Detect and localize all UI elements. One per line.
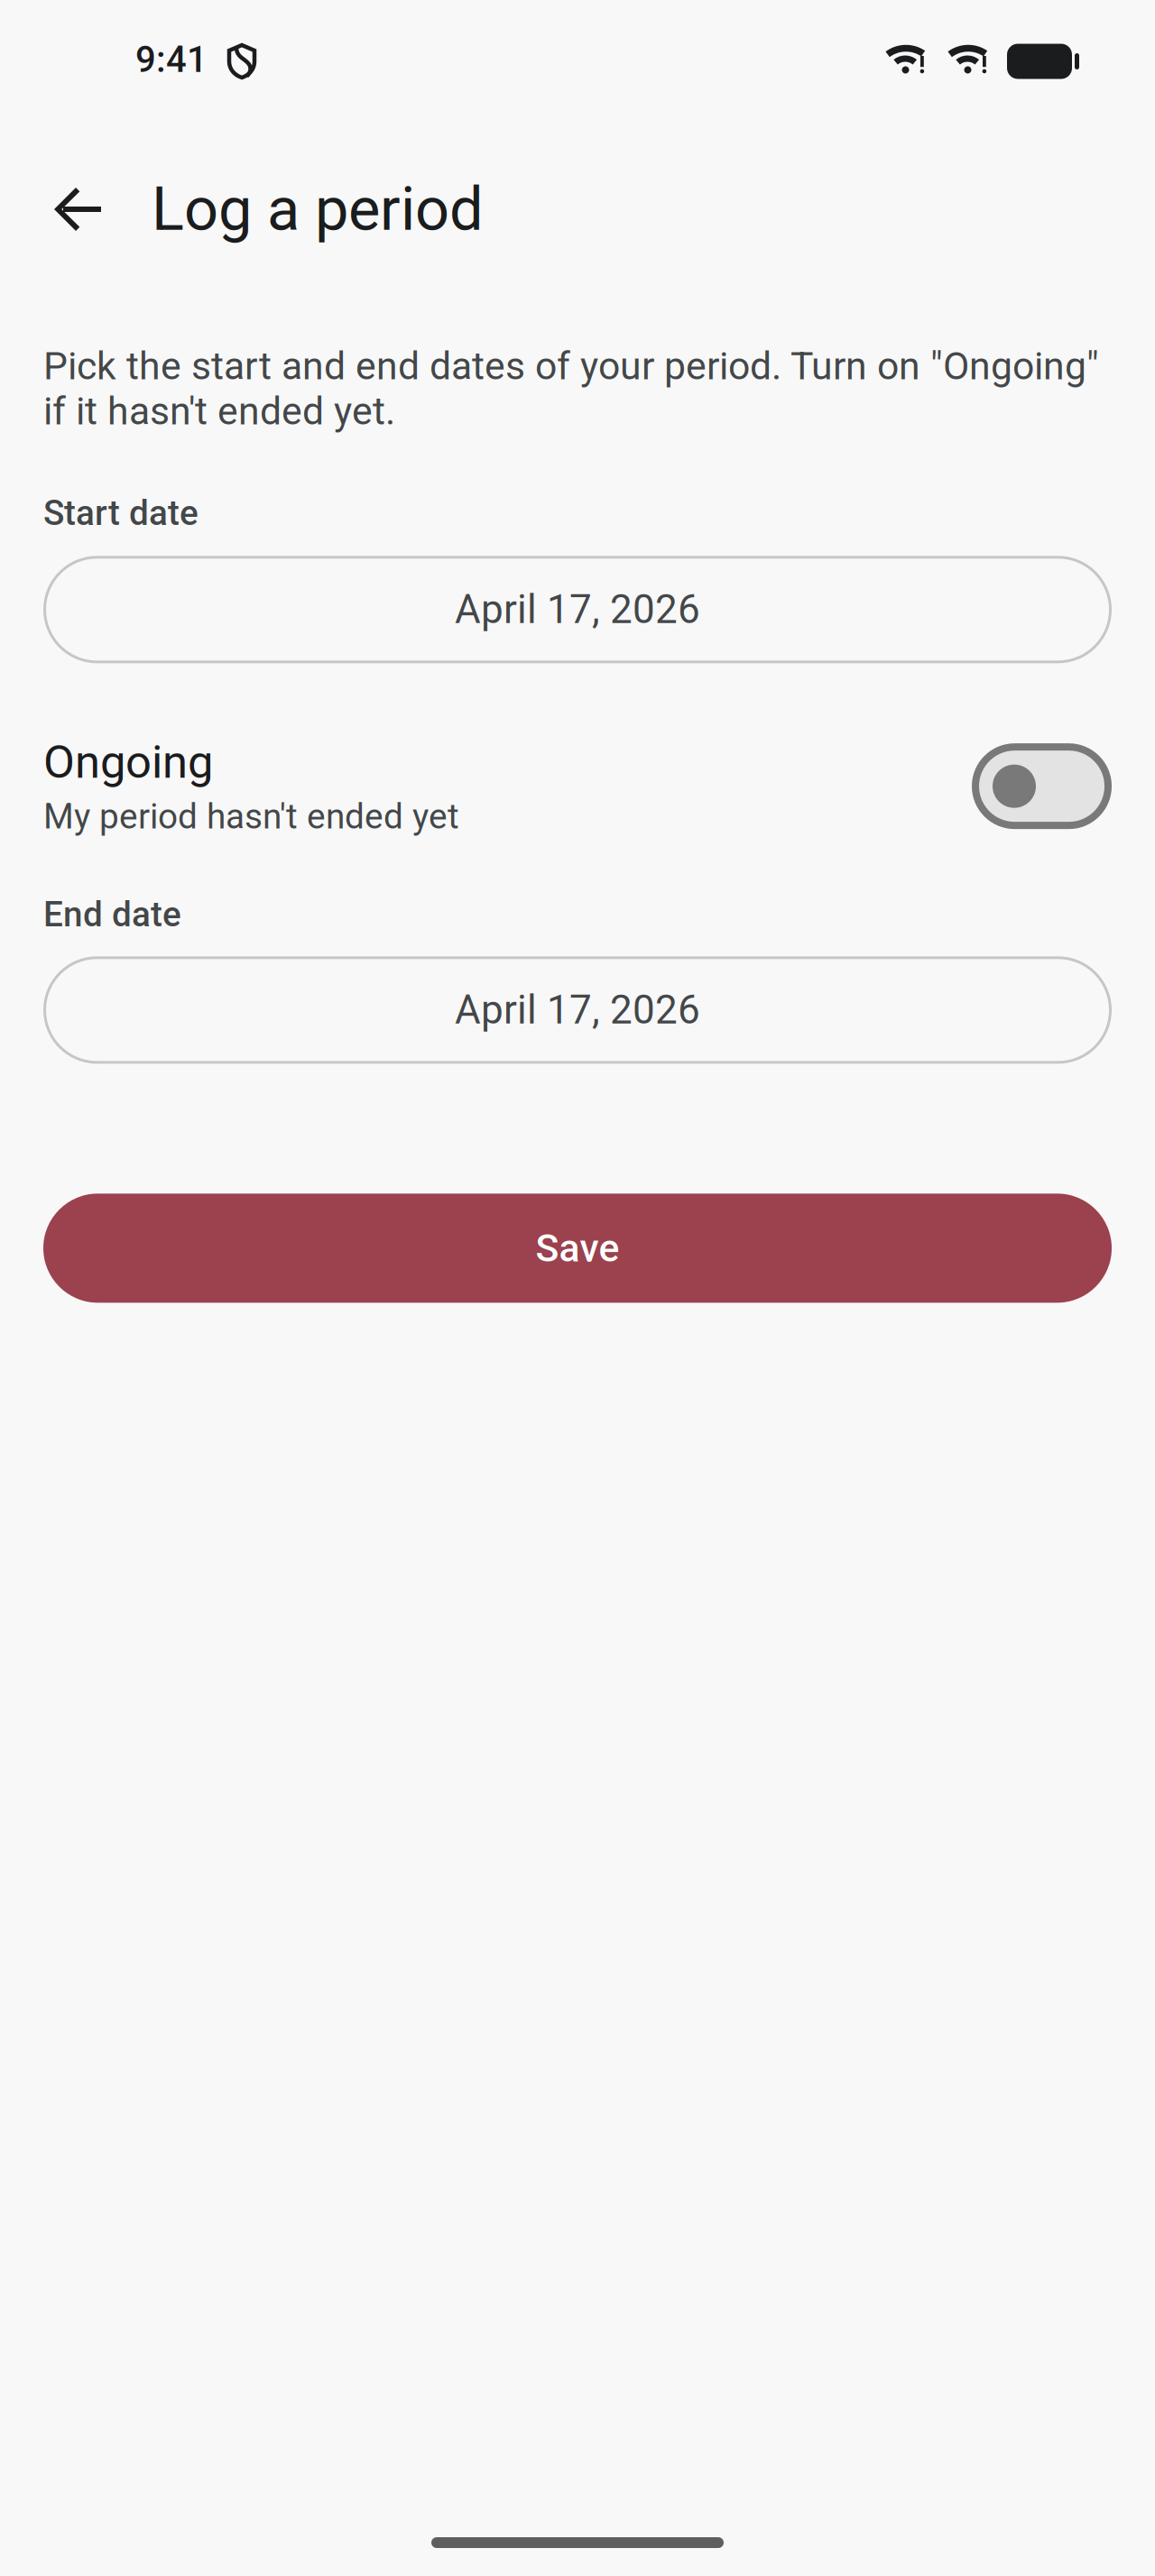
staticText: Save xyxy=(536,1226,619,1271)
staticText: April 17, 2026 xyxy=(455,987,700,1033)
staticText: Pick the start and end dates of your per… xyxy=(43,344,1099,434)
staticText: Ongoing xyxy=(43,735,213,789)
staticText: End date xyxy=(43,894,181,935)
staticText: Start date xyxy=(43,492,199,533)
button[interactable]: End date xyxy=(43,956,1112,1064)
button[interactable]: Back xyxy=(36,166,123,253)
button[interactable]: Ongoing xyxy=(972,743,1112,829)
staticText: Log a period xyxy=(152,174,484,244)
button[interactable]: Start date xyxy=(43,556,1112,663)
staticText: My period hasn't ended yet xyxy=(43,796,459,837)
staticText: 9:41 xyxy=(135,38,208,81)
staticText: April 17, 2026 xyxy=(455,586,700,633)
button[interactable]: Save xyxy=(43,1194,1112,1303)
